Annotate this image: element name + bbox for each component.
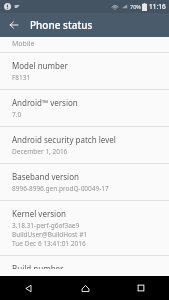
button[interactable]: Baseband version [0, 164, 169, 200]
button[interactable]: Model number [0, 53, 169, 89]
staticText: Tue Dec 6 13:41:01 2016 [12, 239, 86, 248]
staticText: Android security patch level [12, 134, 116, 145]
button[interactable]: Back [0, 276, 57, 300]
button[interactable]: Android security patch level [0, 127, 169, 163]
staticText: December 1, 2016 [12, 147, 68, 156]
staticText: 70% [130, 3, 141, 10]
staticText: 11:16 [149, 2, 166, 11]
button[interactable]: Kernel version [0, 201, 169, 255]
button[interactable]: Recent apps [113, 276, 169, 300]
button[interactable]: Back [5, 16, 23, 34]
button[interactable]: Android™ version [0, 90, 169, 126]
button[interactable]: Mobile [0, 37, 169, 52]
staticText: BuildUser@BuildHost #1 [12, 230, 88, 239]
staticText: Android™ version [12, 97, 78, 108]
staticText: Baseband version [12, 171, 79, 182]
staticText: F8131 [12, 73, 31, 82]
staticText: Model number [12, 60, 68, 71]
staticText: Build number [12, 263, 64, 269]
button[interactable]: Home [57, 276, 113, 300]
staticText: 7.0 [12, 110, 22, 119]
staticText: 8996-8996.gen.prodQ-00049-17 [12, 184, 109, 193]
staticText: 3.18.31-perf-g6af3ae9 [12, 221, 80, 230]
staticText: Mobile [12, 39, 35, 49]
staticText: Kernel version [12, 208, 66, 219]
button[interactable]: Build number [0, 256, 169, 276]
staticText: Phone status [30, 18, 93, 32]
